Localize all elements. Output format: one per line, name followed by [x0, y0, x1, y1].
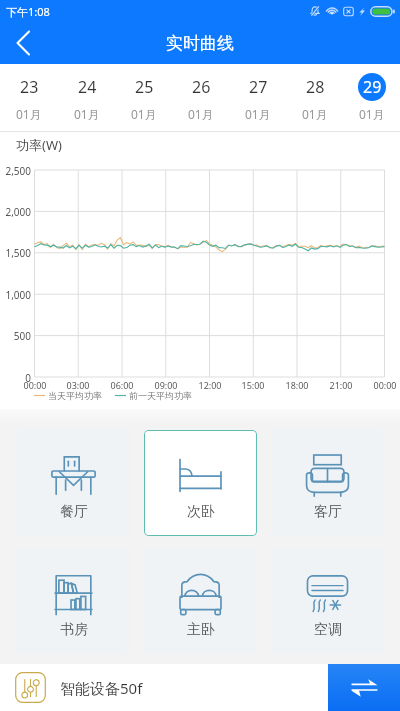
staticText: 09:00 [146, 379, 186, 391]
staticText: 次卧 [187, 503, 215, 521]
staticText: 实时曲线 [166, 33, 234, 54]
staticText: 18:00 [277, 379, 317, 391]
staticText: 06:00 [102, 379, 142, 391]
staticText: 01月 [16, 106, 42, 122]
button[interactable]: 29 [343, 64, 400, 131]
button[interactable]: 25 [115, 64, 172, 131]
staticText: 15:00 [233, 379, 273, 391]
staticText: 12:00 [190, 379, 230, 391]
button[interactable]: 智能设备50f [15, 664, 328, 711]
staticText: 21:00 [321, 379, 361, 391]
button[interactable]: 26 [172, 64, 229, 131]
button[interactable]: 27 [229, 64, 286, 131]
button[interactable]: 次卧 [144, 430, 257, 536]
staticText: 空调 [314, 621, 342, 639]
staticText: 01月 [188, 106, 214, 122]
staticText: 01月 [74, 106, 100, 122]
staticText: 1,500 [0, 246, 31, 260]
staticText: 2,500 [0, 164, 31, 178]
staticText: 功率(W) [16, 136, 62, 154]
staticText: 1,000 [0, 288, 31, 302]
staticText: 前一天平均功率 [129, 390, 192, 401]
button[interactable]: 24 [58, 64, 115, 131]
staticText: 下午1:08 [6, 4, 50, 19]
staticText: 当天平均功率 [48, 390, 102, 401]
staticText: 24 [78, 76, 97, 98]
staticText: 餐厅 [60, 503, 88, 521]
button[interactable]: 餐厅 [16, 430, 130, 536]
button[interactable]: 书房 [16, 548, 130, 654]
staticText: 01月 [245, 106, 271, 122]
staticText: 书房 [60, 621, 88, 639]
button[interactable]: 28 [286, 64, 343, 131]
staticText: 27 [249, 76, 268, 98]
staticText: 00:00 [365, 379, 400, 391]
staticText: 25 [135, 76, 154, 98]
button[interactable]: 23 [0, 64, 58, 131]
staticText: 00:00 [15, 379, 55, 391]
staticText: 2,000 [0, 205, 31, 219]
button[interactable]: 主卧 [144, 548, 257, 654]
staticText: 23 [20, 76, 39, 98]
staticText: 28 [306, 76, 325, 98]
staticText: 29 [363, 76, 382, 98]
staticText: 01月 [131, 106, 157, 122]
staticText: 0 [0, 371, 31, 385]
staticText: 26 [192, 76, 211, 98]
staticText: 03:00 [58, 379, 98, 391]
staticText: 客厅 [314, 503, 342, 521]
button[interactable]: 空调 [271, 548, 384, 654]
staticText: 主卧 [187, 621, 215, 639]
button[interactable]: Back [0, 22, 46, 64]
button[interactable]: 客厅 [271, 430, 384, 536]
staticText: 01月 [359, 106, 385, 122]
button[interactable]: Switch device [328, 664, 400, 711]
staticText: 500 [0, 329, 31, 343]
staticText: 01月 [302, 106, 328, 122]
staticText: 智能设备50f [60, 678, 143, 698]
